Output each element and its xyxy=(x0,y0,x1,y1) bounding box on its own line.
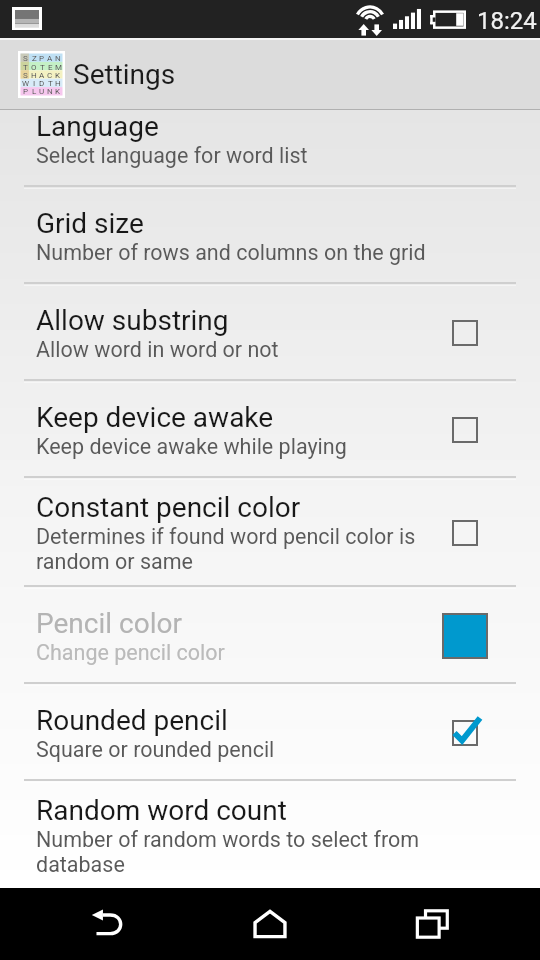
button[interactable]: Random word count xyxy=(0,783,540,888)
button[interactable]: Allow substring xyxy=(0,286,540,379)
staticText: D xyxy=(39,79,45,87)
staticText: Grid size xyxy=(36,207,144,240)
button[interactable]: Recent apps xyxy=(378,888,488,960)
button[interactable]: Pencil color xyxy=(442,613,488,659)
staticText: C xyxy=(47,71,53,79)
button[interactable]: Unchecked xyxy=(442,510,488,556)
staticText: Keep device awake xyxy=(36,401,274,434)
staticText: P xyxy=(39,54,45,63)
staticText: H xyxy=(55,79,61,87)
staticText: M xyxy=(55,63,62,71)
staticText: Pencil color xyxy=(36,607,182,640)
button[interactable]: Unchecked xyxy=(442,407,488,453)
staticText: Allow substring xyxy=(36,304,229,337)
staticText: U xyxy=(39,87,45,95)
staticText: W xyxy=(22,79,30,87)
staticText: Change pencil color xyxy=(36,640,225,665)
button[interactable]: Unchecked xyxy=(442,310,488,356)
button[interactable]: Keep device awake xyxy=(0,383,540,476)
staticText: Number of rows and columns on the grid xyxy=(36,240,426,265)
staticText: Constant pencil color xyxy=(36,491,301,524)
staticText: Language xyxy=(36,110,159,143)
staticText: H xyxy=(31,71,37,79)
staticText: S xyxy=(23,54,28,63)
staticText: K xyxy=(55,71,61,79)
staticText: 18:24 xyxy=(477,7,537,35)
staticText: Square or rounded pencil xyxy=(36,737,275,762)
staticText: T xyxy=(23,63,28,71)
staticText: Determines if found word pencil color is… xyxy=(36,524,456,574)
button[interactable]: Pencil color xyxy=(0,589,540,682)
button[interactable]: Rounded pencil xyxy=(0,686,540,779)
staticText: P xyxy=(23,87,29,95)
staticText: Select language for word list xyxy=(36,143,308,168)
staticText: Number of random words to select from da… xyxy=(36,827,456,877)
staticText: A xyxy=(47,54,53,63)
staticText: Random word count xyxy=(36,794,287,827)
staticText: I xyxy=(33,79,36,87)
button[interactable]: Constant pencil color xyxy=(0,480,540,585)
button[interactable]: Language xyxy=(0,110,540,185)
staticText: A xyxy=(39,71,45,79)
staticText: N xyxy=(47,87,53,95)
staticText: Keep device awake while playing xyxy=(36,434,347,459)
staticText: N xyxy=(55,54,61,63)
staticText: T xyxy=(48,79,53,87)
button[interactable]: Grid size xyxy=(0,189,540,282)
staticText: Allow word in word or not xyxy=(36,337,279,362)
staticText: Z xyxy=(32,54,37,63)
staticText: K xyxy=(55,87,61,95)
staticText: Settings xyxy=(73,58,176,91)
staticText: Rounded pencil xyxy=(36,704,228,737)
button[interactable]: Home xyxy=(215,888,325,960)
staticText: T xyxy=(40,63,45,71)
button[interactable]: Checked xyxy=(442,710,488,756)
staticText: S xyxy=(23,71,28,79)
staticText: E xyxy=(48,63,53,71)
staticText: O xyxy=(31,63,37,71)
button[interactable]: Back xyxy=(53,888,163,960)
staticText: L xyxy=(32,87,37,95)
